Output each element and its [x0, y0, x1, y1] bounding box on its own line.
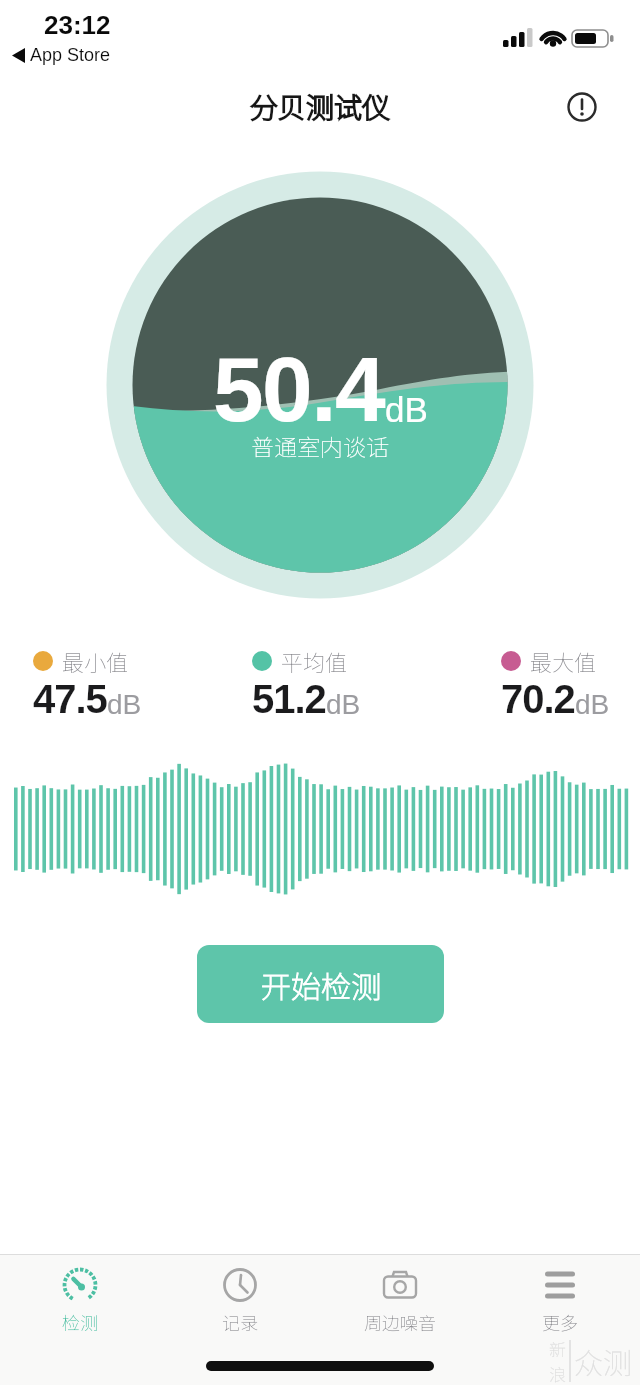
staticText: 23:12 [44, 10, 111, 39]
staticText: 新 [549, 1336, 566, 1361]
staticText: 开始检测 [261, 963, 381, 1006]
staticText: dB [385, 390, 428, 429]
staticText: 开始检测 [261, 963, 381, 1006]
staticText: 浪 [549, 1361, 566, 1385]
button[interactable]: 检测 [0, 1268, 160, 1335]
staticText: 最大值 [530, 645, 597, 677]
staticText: App Store [30, 45, 111, 65]
button[interactable]: 周边噪音 [320, 1268, 480, 1335]
staticText: 检测 [62, 1309, 98, 1335]
staticText: 记录 [222, 1309, 258, 1335]
button[interactable]: 更多 [480, 1268, 640, 1335]
staticText: dB [326, 689, 361, 720]
staticText: 平均值 [281, 645, 348, 677]
staticText: 50.4 [213, 339, 385, 441]
staticText: 更多 [542, 1309, 578, 1335]
staticText: 47.5 [33, 677, 107, 722]
button[interactable]: App Store [12, 45, 111, 65]
staticText: dB [107, 689, 142, 720]
staticText: 普通室内谈话 [251, 429, 389, 462]
staticText: 70.2 [501, 677, 575, 722]
button[interactable]: 记录 [160, 1268, 320, 1335]
staticText: 周边噪音 [364, 1309, 436, 1335]
staticText: 众测 [574, 1340, 633, 1382]
staticText: 分贝测试仪 [250, 86, 391, 127]
staticText: 最小值 [62, 645, 129, 677]
staticText: 分贝测试仪 [250, 86, 391, 127]
button[interactable]: 开始检测 [197, 945, 444, 1023]
staticText: dB [575, 689, 610, 720]
staticText: 51.2 [252, 677, 326, 722]
